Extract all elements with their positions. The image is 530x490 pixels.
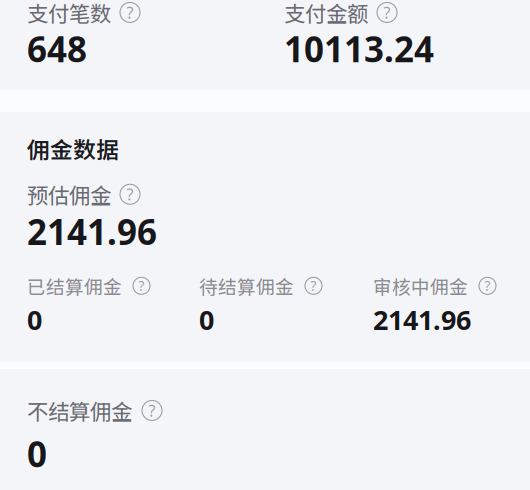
staticText: ?: [310, 276, 316, 295]
button[interactable]: 帮助说明: [142, 400, 162, 420]
staticText: 不结算佣金: [27, 395, 132, 426]
staticText: 648: [27, 25, 87, 72]
staticText: 2141.96: [373, 301, 471, 338]
button[interactable]: 帮助说明: [133, 277, 150, 294]
button[interactable]: 帮助说明: [377, 2, 397, 22]
staticText: 10113.24: [284, 25, 434, 72]
staticText: ?: [126, 1, 133, 23]
button[interactable]: 帮助说明: [479, 277, 496, 294]
staticText: 支付笔数: [27, 0, 111, 28]
staticText: 0: [27, 301, 42, 338]
staticText: 支付金额: [284, 0, 368, 28]
staticText: 0: [27, 430, 47, 477]
staticText: 待结算佣金: [199, 272, 294, 299]
staticText: ?: [484, 276, 490, 295]
staticText: 已结算佣金: [27, 272, 122, 299]
staticText: 佣金数据: [27, 132, 119, 165]
staticText: ?: [383, 1, 390, 23]
staticText: ?: [148, 399, 155, 421]
staticText: 0: [199, 301, 214, 338]
staticText: 预估佣金: [27, 179, 111, 210]
staticText: ?: [138, 276, 144, 295]
staticText: 审核中佣金: [373, 272, 468, 299]
staticText: 2141.96: [27, 208, 157, 255]
button[interactable]: 帮助说明: [120, 184, 140, 204]
button[interactable]: 帮助说明: [120, 2, 140, 22]
button[interactable]: 帮助说明: [305, 277, 322, 294]
staticText: ?: [126, 183, 133, 205]
